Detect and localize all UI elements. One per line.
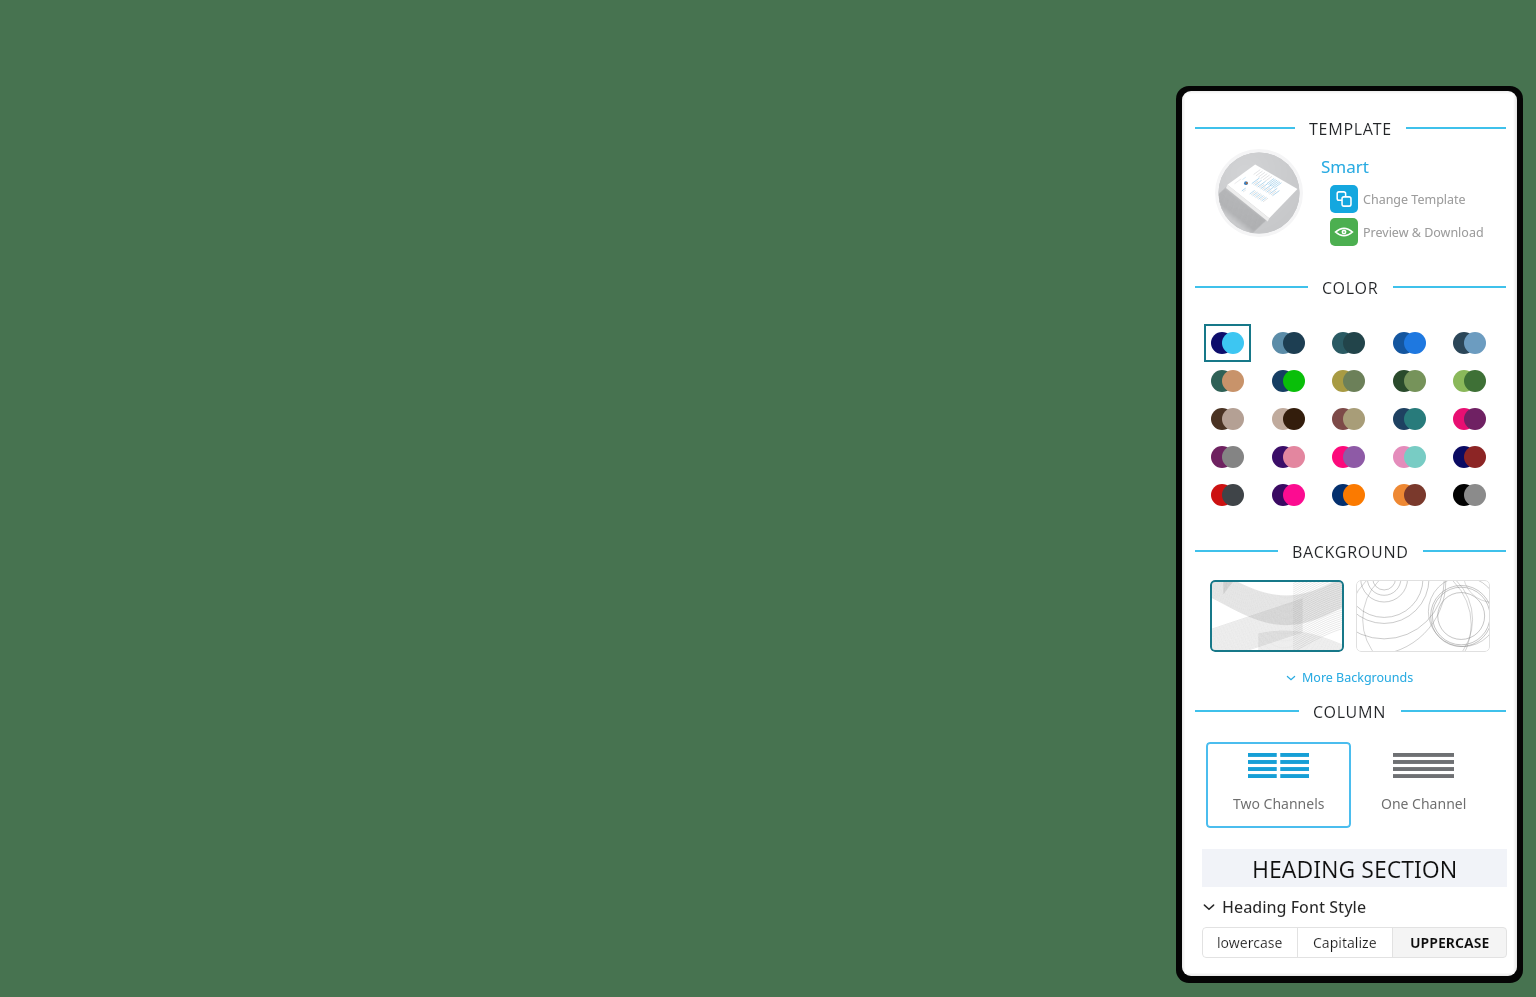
staticText: Capitalize (1313, 933, 1377, 952)
button[interactable]: Colour scheme (1446, 438, 1493, 476)
button[interactable]: Colour scheme (1446, 400, 1493, 438)
staticText: lowercase (1217, 933, 1283, 952)
staticText: BACKGROUND (1292, 541, 1409, 561)
staticText: One Channel (1381, 794, 1467, 813)
button[interactable]: Colour scheme (1265, 476, 1312, 514)
button[interactable]: Background style 1 (1210, 580, 1344, 652)
button[interactable]: Smart (1321, 155, 1369, 178)
button[interactable]: Background style 2 (1356, 580, 1490, 652)
button[interactable]: Colour scheme (1386, 438, 1433, 476)
button[interactable]: Colour scheme (1325, 400, 1372, 438)
button[interactable]: Colour scheme (1265, 324, 1312, 362)
button[interactable]: Colour scheme (1386, 476, 1433, 514)
button[interactable]: Template preview (1215, 149, 1303, 237)
button[interactable]: Colour scheme (1204, 476, 1251, 514)
button[interactable]: Colour scheme (1446, 362, 1493, 400)
staticText: TEMPLATE (1309, 118, 1392, 138)
button[interactable]: Colour scheme (1446, 476, 1493, 514)
staticText: Change Template (1363, 191, 1466, 208)
staticText: Heading Font Style (1222, 896, 1367, 918)
staticText: UPPERCASE (1410, 933, 1490, 952)
button[interactable]: Colour scheme (1325, 324, 1372, 362)
button[interactable]: Colour scheme (1204, 324, 1251, 362)
button[interactable]: UPPERCASE (1393, 927, 1507, 958)
staticText: COLUMN (1313, 701, 1387, 721)
button[interactable]: More Backgrounds (1182, 669, 1517, 686)
staticText: More Backgrounds (1302, 669, 1414, 686)
button[interactable]: Colour scheme (1325, 362, 1372, 400)
button[interactable]: Preview & Download (1330, 218, 1484, 246)
button[interactable]: Colour scheme (1265, 438, 1312, 476)
button[interactable]: Colour scheme (1265, 362, 1312, 400)
button[interactable]: lowercase (1202, 927, 1297, 958)
button[interactable]: Change Template (1330, 185, 1466, 213)
button[interactable]: One Channel (1351, 742, 1496, 828)
button[interactable]: Colour scheme (1325, 438, 1372, 476)
button[interactable]: Colour scheme (1204, 438, 1251, 476)
button[interactable]: Colour scheme (1325, 476, 1372, 514)
button[interactable]: Colour scheme (1265, 400, 1312, 438)
staticText: HEADING SECTION (1252, 853, 1458, 884)
button[interactable]: Colour scheme (1204, 400, 1251, 438)
button[interactable]: Colour scheme (1386, 324, 1433, 362)
button[interactable]: Colour scheme (1446, 324, 1493, 362)
button[interactable]: Heading Font Style (1202, 896, 1367, 918)
button[interactable]: Colour scheme (1204, 362, 1251, 400)
button[interactable]: Two Channels (1206, 742, 1351, 828)
staticText: COLOR (1322, 277, 1379, 297)
staticText: Preview & Download (1363, 224, 1484, 241)
button[interactable]: Colour scheme (1386, 362, 1433, 400)
staticText: Two Channels (1233, 794, 1325, 813)
button[interactable]: Colour scheme (1386, 400, 1433, 438)
button[interactable]: Capitalize (1298, 927, 1392, 958)
